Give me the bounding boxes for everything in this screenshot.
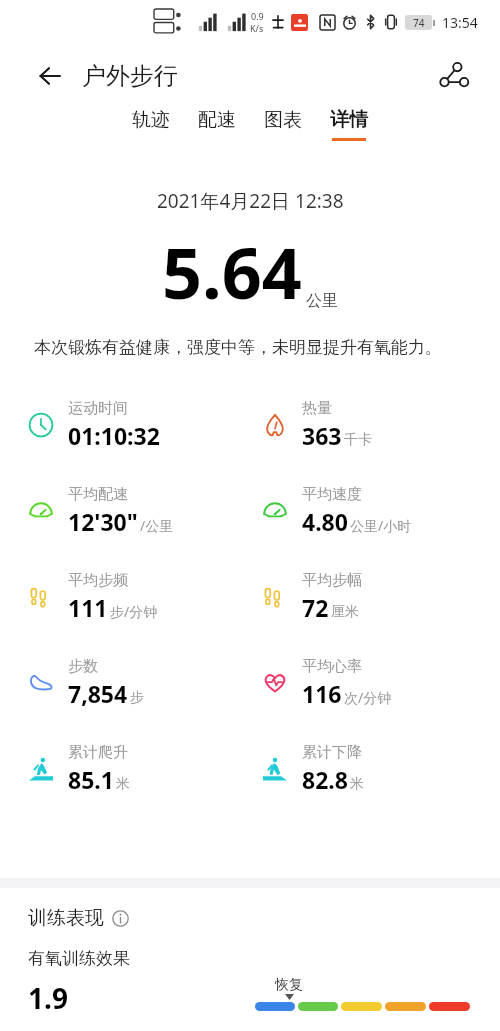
staticText: 82.8 bbox=[302, 764, 348, 795]
staticText: 累计下降 bbox=[302, 743, 362, 762]
staticText: 363 bbox=[302, 420, 342, 451]
staticText: 平均速度 bbox=[302, 485, 362, 504]
staticText: 5.64 bbox=[162, 224, 302, 319]
staticText: 0.9 bbox=[251, 10, 264, 22]
staticText: 平均心率 bbox=[302, 657, 362, 676]
staticText: 本次锻炼有益健康，强度中等，未明显提升有氧能力。 bbox=[34, 337, 466, 358]
staticText: 运动时间 bbox=[68, 399, 128, 418]
staticText: 米 bbox=[116, 775, 130, 793]
button[interactable]: 累计下降 bbox=[260, 726, 500, 812]
staticText: 公里 bbox=[306, 291, 338, 311]
staticText: 116 bbox=[302, 678, 342, 709]
button[interactable]: 平均配速 bbox=[26, 468, 250, 554]
staticText: 公里/小时 bbox=[350, 516, 412, 535]
staticText: 1.9 bbox=[28, 979, 68, 1017]
staticText: 热量 bbox=[302, 399, 332, 418]
staticText: 4.80 bbox=[302, 506, 348, 537]
staticText: 74 bbox=[413, 16, 425, 30]
staticText: 恢复 bbox=[275, 976, 303, 994]
staticText: K/s bbox=[250, 22, 264, 34]
staticText: 步/分钟 bbox=[110, 602, 158, 621]
button[interactable]: 图表 bbox=[250, 108, 316, 141]
staticText: 轨迹 bbox=[132, 108, 170, 132]
button[interactable]: 训练表现 bbox=[28, 906, 129, 930]
other: Info bbox=[112, 910, 129, 927]
staticText: 平均步幅 bbox=[302, 571, 362, 590]
button[interactable]: 步数 bbox=[26, 640, 250, 726]
staticText: 详情 bbox=[330, 108, 368, 132]
staticText: 72 bbox=[302, 592, 329, 623]
button[interactable]: 详情 bbox=[316, 108, 382, 141]
staticText: 步 bbox=[130, 689, 144, 707]
staticText: 2021年4月22日 12:38 bbox=[157, 188, 344, 214]
staticText: 厘米 bbox=[331, 603, 359, 621]
button[interactable]: Share bbox=[432, 54, 476, 98]
button[interactable]: 平均速度 bbox=[260, 468, 500, 554]
staticText: 次/分钟 bbox=[344, 688, 392, 707]
button[interactable]: 运动时间 bbox=[26, 382, 250, 468]
staticText: 米 bbox=[350, 775, 364, 793]
button[interactable]: 轨迹 bbox=[118, 108, 184, 141]
staticText: 累计爬升 bbox=[68, 743, 128, 762]
staticText: 有氧训练效果 bbox=[28, 948, 130, 969]
staticText: 千卡 bbox=[344, 431, 372, 449]
button[interactable]: 配速 bbox=[184, 108, 250, 141]
staticText: 平均步频 bbox=[68, 571, 128, 590]
button[interactable]: 平均步频 bbox=[26, 554, 250, 640]
staticText: 平均配速 bbox=[68, 485, 128, 504]
button[interactable]: 平均步幅 bbox=[260, 554, 500, 640]
staticText: /公里 bbox=[140, 516, 174, 535]
button[interactable]: 平均心率 bbox=[260, 640, 500, 726]
staticText: 7,854 bbox=[68, 678, 128, 709]
staticText: 训练表现 bbox=[28, 906, 104, 930]
staticText: 步数 bbox=[68, 657, 98, 676]
staticText: 图表 bbox=[264, 108, 302, 132]
button[interactable]: Back bbox=[30, 56, 70, 96]
staticText: 111 bbox=[68, 592, 108, 623]
staticText: 01:10:32 bbox=[68, 420, 160, 451]
staticText: 12'30" bbox=[68, 506, 138, 537]
staticText: 13:54 bbox=[442, 13, 478, 32]
staticText: 配速 bbox=[198, 108, 236, 132]
button[interactable]: 热量 bbox=[260, 382, 500, 468]
button[interactable]: 累计爬升 bbox=[26, 726, 250, 812]
staticText: 85.1 bbox=[68, 764, 114, 795]
staticText: 户外步行 bbox=[82, 61, 178, 91]
